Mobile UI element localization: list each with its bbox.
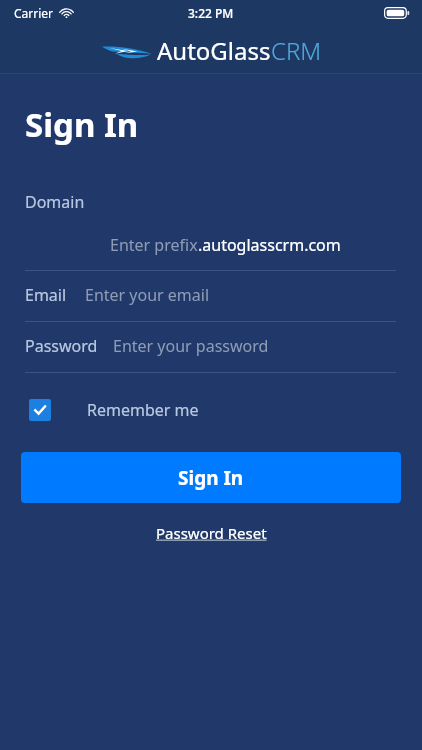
staticText: 3:22 PM — [188, 5, 234, 21]
staticText: Remember me — [87, 399, 199, 421]
staticText: AutoGlass — [157, 34, 271, 67]
button[interactable]: Email — [0, 284, 422, 322]
staticText: Enter prefix — [110, 234, 198, 256]
staticText: CRM — [271, 34, 322, 67]
button[interactable]: Sign In — [21, 452, 401, 503]
staticText: Enter your password — [113, 335, 269, 357]
staticText: Sign In — [178, 465, 244, 491]
staticText: Carrier — [14, 5, 54, 21]
staticText: Password — [25, 335, 98, 357]
button[interactable]: Password — [0, 335, 422, 373]
staticText: Password Reset — [156, 523, 267, 543]
button[interactable]: Password Reset — [150, 520, 273, 546]
staticText: .autoglasscrm.com — [198, 234, 341, 256]
staticText: Sign In — [25, 102, 139, 147]
staticText: Domain — [25, 191, 85, 213]
button[interactable]: Domain — [0, 191, 422, 271]
staticText: Email — [25, 284, 67, 306]
staticText: Enter your email — [85, 284, 210, 306]
button[interactable]: Remember me — [25, 395, 203, 425]
